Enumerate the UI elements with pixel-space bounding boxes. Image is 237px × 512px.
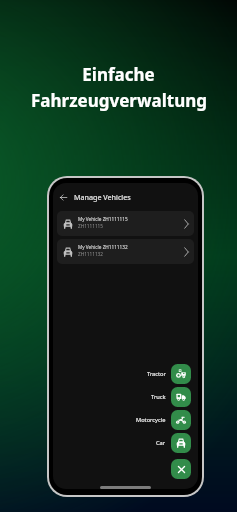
button[interactable]: Car — [171, 433, 191, 453]
button[interactable]: Motorcycle — [171, 410, 191, 430]
button[interactable]: Back — [56, 190, 70, 204]
button[interactable]: Tractor — [171, 364, 191, 384]
staticText: My Vehicle ZH1111115 — [78, 216, 128, 222]
button[interactable]: Truck — [171, 387, 191, 407]
staticText: Tractor — [147, 370, 166, 378]
staticText: Car — [156, 439, 166, 447]
staticText: ZH1111132 — [78, 251, 103, 257]
staticText: Fahrzeugverwaltung — [31, 89, 207, 112]
staticText: My Vehicle ZH1111132 — [78, 244, 128, 250]
button[interactable]: Close — [171, 459, 191, 479]
staticText: Truck — [151, 393, 166, 401]
staticText: Einfache — [82, 63, 155, 86]
button[interactable]: My Vehicle ZH1111115 — [57, 211, 194, 236]
staticText: Motorcycle — [136, 416, 166, 424]
staticText: ZH1111115 — [78, 223, 103, 229]
staticText: Manage Vehicles — [74, 192, 131, 202]
button[interactable]: My Vehicle ZH1111132 — [57, 239, 194, 264]
